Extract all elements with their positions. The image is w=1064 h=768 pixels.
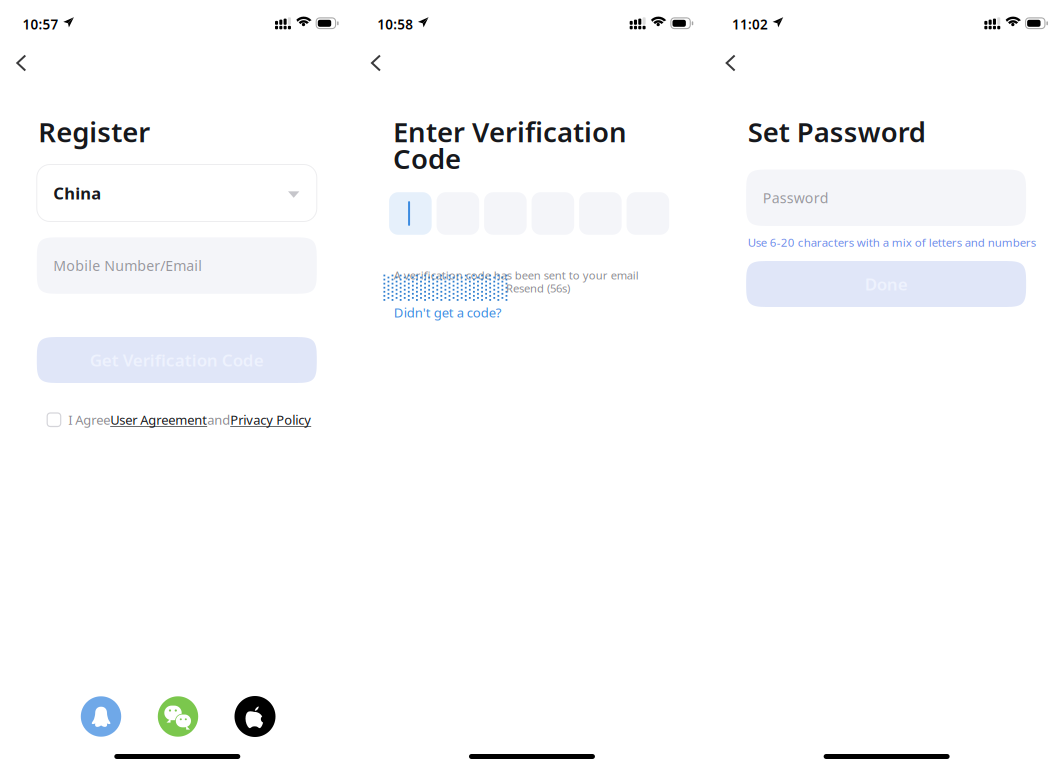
staticText: 10:58 xyxy=(377,15,413,33)
staticText: A verification code has been sent to you… xyxy=(394,267,639,283)
staticText: 10:57 xyxy=(23,15,59,33)
staticText: I Agree xyxy=(68,411,110,428)
staticText: 11:02 xyxy=(732,15,768,33)
staticText: Register xyxy=(38,113,150,150)
staticText: Use 6-20 characters with a mix of letter… xyxy=(748,234,1036,250)
staticText: China xyxy=(53,182,101,204)
button[interactable]: Back xyxy=(0,43,42,83)
button[interactable]: Didn't get a code? xyxy=(394,303,502,321)
button[interactable]: Done xyxy=(746,261,1026,307)
button[interactable]: Sign in with WeChat xyxy=(157,696,198,737)
staticText: Privacy Policy xyxy=(230,411,311,428)
staticText: User Agreement xyxy=(110,411,207,428)
staticText: Mobile Number/Email xyxy=(53,256,202,275)
button[interactable]: Sign in with QQ xyxy=(80,696,121,737)
staticText: Password xyxy=(763,188,829,207)
staticText: and xyxy=(207,411,230,428)
staticText: Done xyxy=(865,272,908,296)
staticText: Didn't get a code? xyxy=(394,303,502,321)
button[interactable]: Sign in with Apple xyxy=(234,696,275,737)
staticText: Code xyxy=(393,140,461,177)
button[interactable]: User Agreement xyxy=(110,411,207,428)
button[interactable]: Back xyxy=(355,43,397,83)
button[interactable]: Privacy Policy xyxy=(230,411,311,428)
button[interactable]: Back xyxy=(709,43,752,83)
staticText: Resend (56s) xyxy=(506,280,570,296)
button[interactable]: Agree to terms xyxy=(47,409,68,430)
staticText: Get Verification Code xyxy=(90,348,264,372)
button[interactable]: China xyxy=(37,164,317,221)
button[interactable]: Get Verification Code xyxy=(37,337,317,383)
staticText: Enter Verification xyxy=(393,113,627,150)
staticText: Set Password xyxy=(748,113,926,150)
